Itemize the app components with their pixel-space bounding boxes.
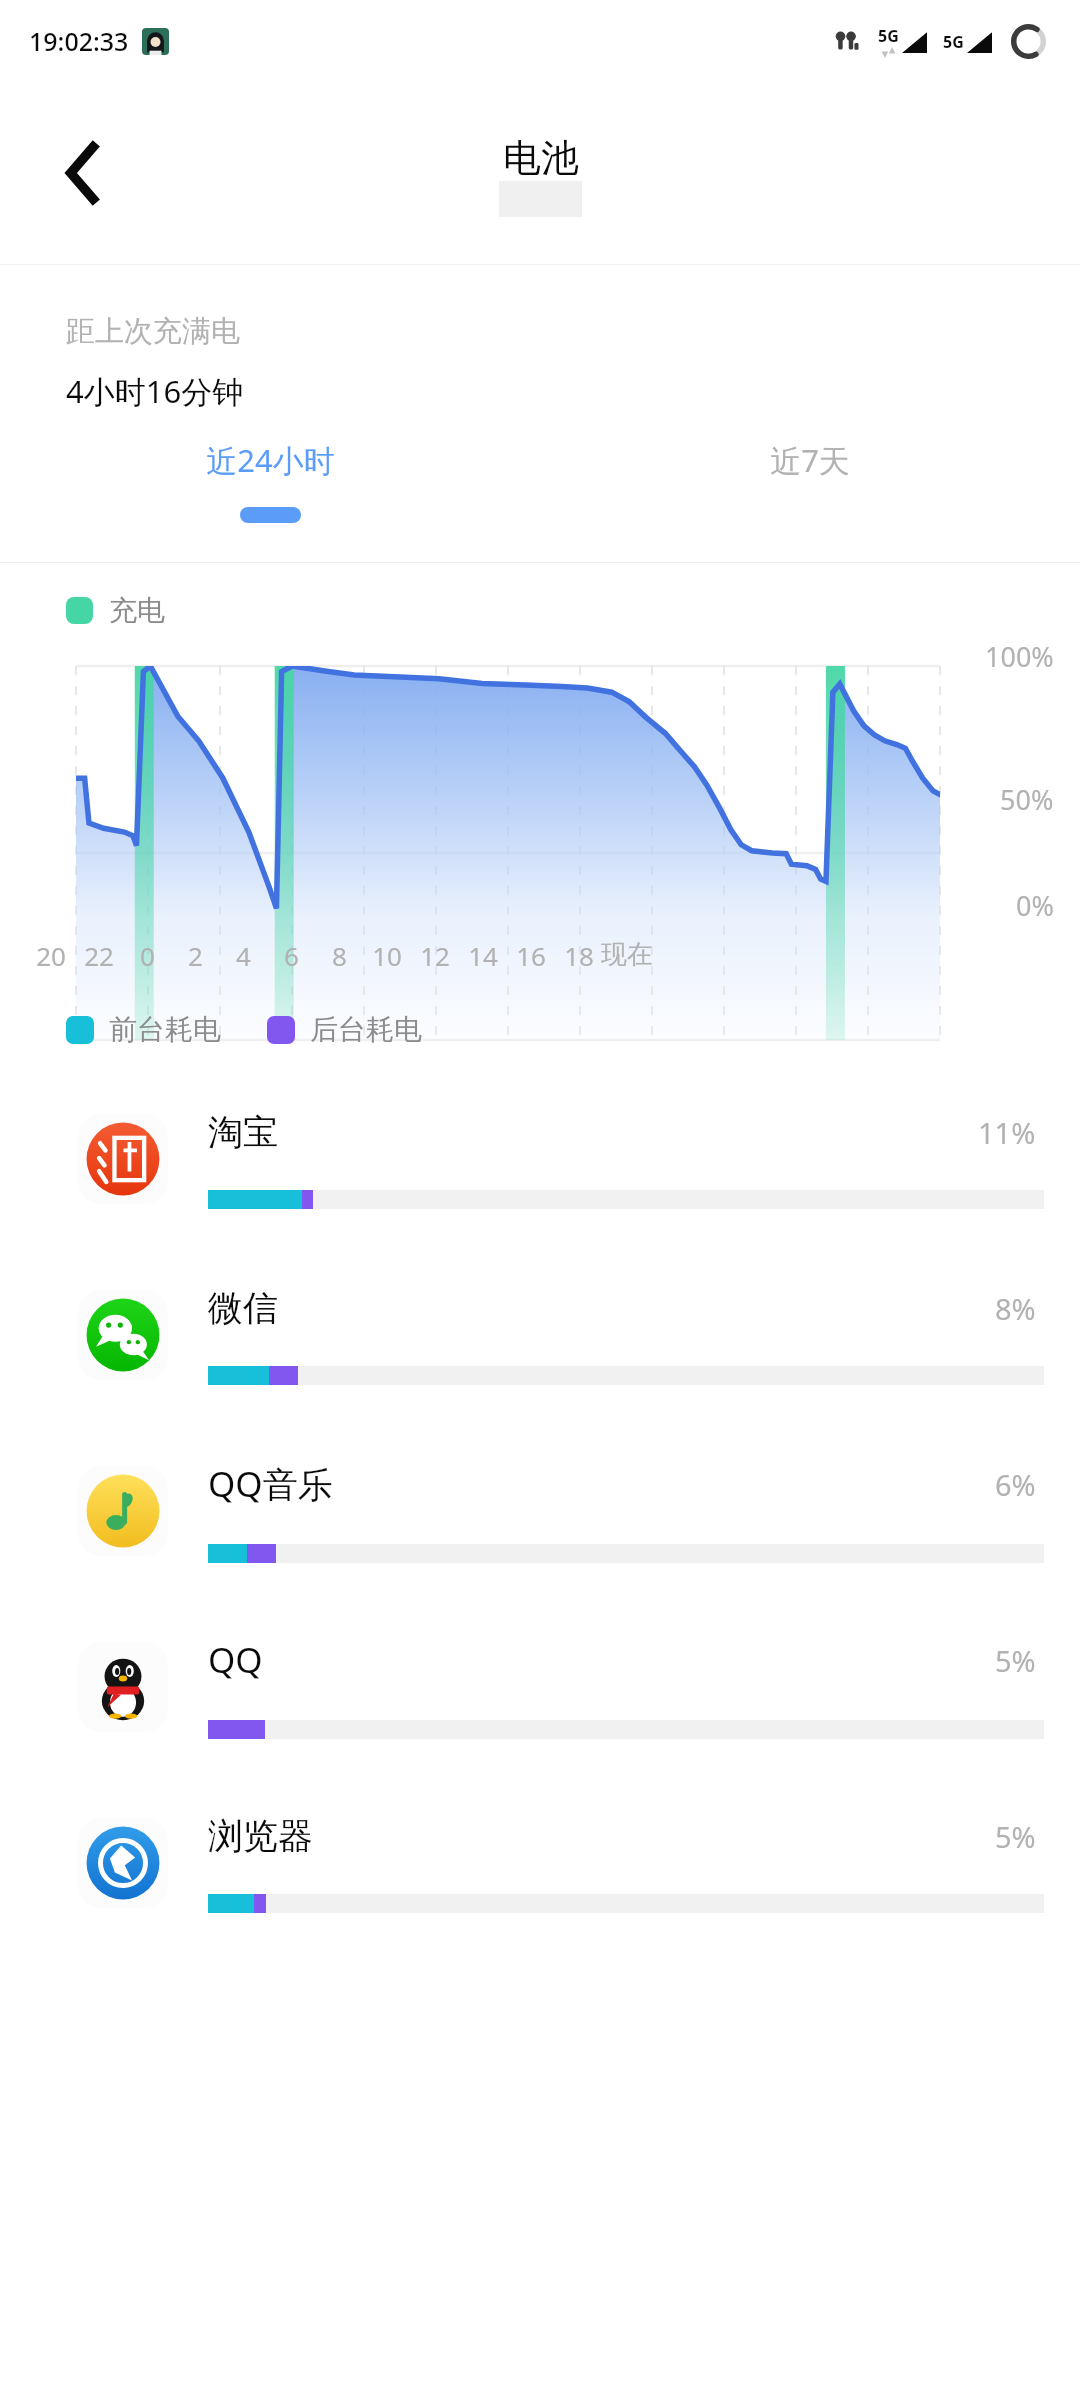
staticText: QQ xyxy=(208,1636,263,1684)
staticText: 电池 xyxy=(503,134,579,182)
button[interactable]: QQ音乐 xyxy=(0,1423,1080,1599)
staticText: 22 xyxy=(84,938,114,973)
staticText: 12 xyxy=(420,938,450,973)
staticText: 近24小时 xyxy=(206,439,335,481)
staticText: 4小时16分钟 xyxy=(66,370,244,412)
staticText: 8 xyxy=(332,938,347,973)
staticText: 近7天 xyxy=(770,439,850,481)
button[interactable]: Back xyxy=(44,134,122,212)
staticText: 6 xyxy=(284,938,299,973)
staticText: 8% xyxy=(995,1289,1036,1328)
staticText: 后台耗电 xyxy=(310,1012,422,1047)
staticText: 5% xyxy=(995,1641,1036,1680)
staticText: QQ音乐 xyxy=(208,1460,333,1508)
staticText: 前台耗电 xyxy=(109,1012,221,1047)
staticText: 20 xyxy=(36,938,66,973)
staticText: 11% xyxy=(978,1113,1036,1152)
staticText: 微信 xyxy=(208,1286,278,1330)
staticText: 5G xyxy=(878,25,899,47)
button[interactable]: QQ xyxy=(0,1599,1080,1775)
staticText: 19:02:33 xyxy=(29,24,129,58)
staticText: 100% xyxy=(985,638,1054,675)
other: Battery xyxy=(1011,24,1046,59)
staticText: 50% xyxy=(1000,781,1054,818)
staticText: 6% xyxy=(995,1465,1036,1504)
staticText: 距上次充满电 xyxy=(66,313,240,350)
button[interactable]: 近7天 xyxy=(540,412,1080,562)
staticText: 14 xyxy=(468,938,498,973)
staticText: 4 xyxy=(236,938,251,973)
staticText: 5% xyxy=(995,1817,1036,1856)
button[interactable]: 淘宝 xyxy=(0,1071,1080,1247)
staticText: 现在 xyxy=(601,938,653,971)
staticText: 16 xyxy=(516,938,546,973)
other: Earbuds connected xyxy=(834,28,865,55)
staticText: 0% xyxy=(1016,887,1054,924)
button[interactable]: 近24小时 xyxy=(0,412,540,562)
staticText: 2 xyxy=(188,938,203,973)
staticText: 10 xyxy=(372,938,402,973)
staticText: 淘宝 xyxy=(208,1110,278,1154)
button[interactable]: 浏览器 xyxy=(0,1775,1080,1951)
staticText: 充电 xyxy=(109,593,165,628)
button[interactable]: 微信 xyxy=(0,1247,1080,1423)
staticText: 浏览器 xyxy=(208,1814,313,1858)
staticText: 18 xyxy=(564,938,594,973)
staticText: 0 xyxy=(140,938,155,973)
staticText: 5G xyxy=(943,31,964,53)
